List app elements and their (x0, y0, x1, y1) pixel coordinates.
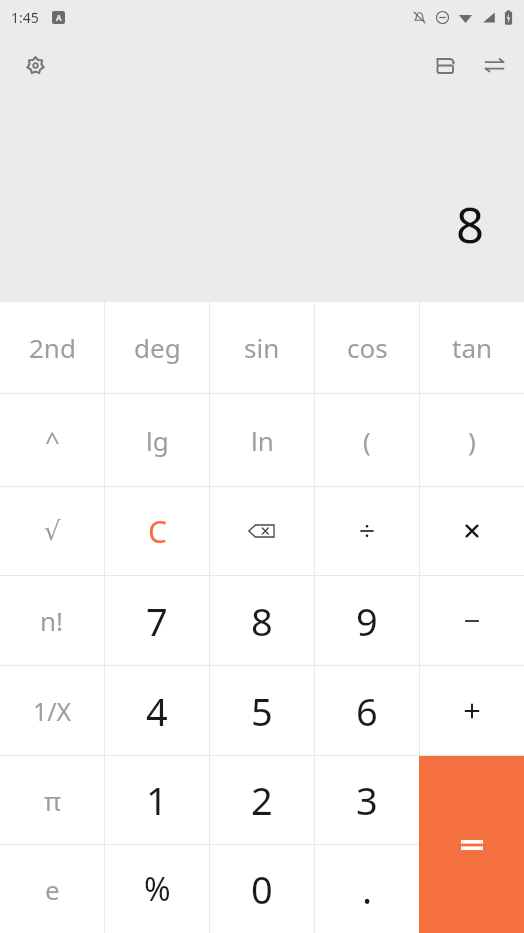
staticText: tan (452, 330, 493, 365)
button[interactable]: Multiply (420, 487, 524, 575)
button[interactable]: 8 (210, 576, 314, 665)
staticText: cos (347, 330, 388, 365)
staticText: A (56, 12, 62, 23)
button[interactable]: Divide (315, 487, 419, 575)
button[interactable]: cos (315, 301, 419, 393)
button[interactable]: 6 (315, 666, 419, 755)
staticText: ) (468, 423, 476, 458)
button[interactable]: √ (0, 487, 104, 575)
button[interactable]: Minus (420, 576, 524, 665)
staticText: 0 (251, 863, 273, 915)
button[interactable]: 1/X (0, 666, 104, 755)
button[interactable]: tan (420, 301, 524, 393)
staticText: √ (44, 516, 61, 546)
button[interactable]: Backspace (210, 487, 314, 575)
staticText: 4 (146, 685, 168, 737)
staticText: 6 (356, 685, 378, 737)
staticText: deg (134, 330, 181, 365)
staticText: 5 (251, 685, 273, 737)
staticText: 1/X (33, 694, 72, 728)
button[interactable]: ln (210, 394, 314, 486)
staticText: % (144, 867, 171, 911)
button[interactable]: ( (315, 394, 419, 486)
button[interactable]: deg (105, 301, 209, 393)
staticText: 2 (251, 774, 273, 826)
button[interactable]: 3 (315, 756, 419, 844)
button[interactable]: Equals (419, 756, 524, 933)
staticText: 2nd (29, 330, 76, 365)
staticText: sin (244, 330, 280, 365)
button[interactable]: Plus (420, 666, 524, 755)
button[interactable]: History (422, 43, 470, 87)
staticText: . (362, 863, 373, 915)
button[interactable]: ) (420, 394, 524, 486)
staticText: ln (251, 423, 274, 458)
staticText: lg (146, 423, 169, 458)
staticText: 3 (356, 774, 378, 826)
button[interactable]: 4 (105, 666, 209, 755)
button[interactable]: lg (105, 394, 209, 486)
staticText: 1:45 (11, 8, 39, 27)
button[interactable]: Settings (12, 43, 58, 87)
staticText: 9 (356, 595, 378, 647)
staticText: 8 (251, 595, 273, 647)
button[interactable]: C (105, 487, 209, 575)
button[interactable]: % (105, 845, 209, 933)
button[interactable]: 0 (210, 845, 314, 933)
button[interactable]: Unit converter (470, 43, 518, 87)
button[interactable]: 5 (210, 666, 314, 755)
staticText: 1 (146, 774, 168, 826)
staticText: ( (363, 423, 371, 458)
button[interactable]: π (0, 756, 104, 844)
staticText: n! (40, 603, 64, 638)
staticText: e (45, 872, 60, 907)
staticText: π (44, 783, 61, 818)
button[interactable]: e (0, 845, 104, 933)
button[interactable]: sin (210, 301, 314, 393)
button[interactable]: ^ (0, 394, 104, 486)
button[interactable]: 7 (105, 576, 209, 665)
button[interactable]: . (315, 845, 419, 933)
staticText: C (148, 511, 167, 552)
button[interactable]: 9 (315, 576, 419, 665)
staticText: 8 (456, 191, 485, 258)
staticText: ^ (45, 423, 60, 458)
button[interactable]: 1 (105, 756, 209, 844)
button[interactable]: n! (0, 576, 104, 665)
button[interactable]: 2 (210, 756, 314, 844)
button[interactable]: 2nd (0, 301, 104, 393)
staticText: 7 (146, 595, 168, 647)
